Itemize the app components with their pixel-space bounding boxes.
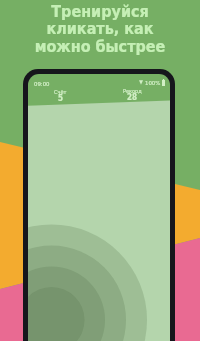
staticText: 100%	[145, 79, 161, 86]
staticText: Рекорд	[123, 88, 142, 94]
staticText: 09:00	[34, 80, 50, 87]
staticText: Счёт	[54, 89, 67, 95]
button[interactable]: 09:00	[28, 74, 170, 341]
staticText: 5	[58, 94, 64, 103]
staticText: 28	[127, 93, 138, 102]
staticText: Тренируйся кликать, как можно быстрее	[0, 2, 200, 56]
